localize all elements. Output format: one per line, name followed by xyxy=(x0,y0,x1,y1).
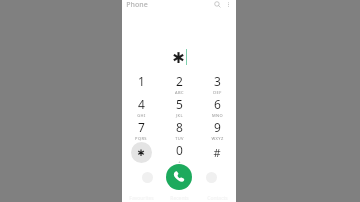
staticText: Contacts xyxy=(207,195,228,202)
button[interactable]: Favourites xyxy=(122,194,160,202)
staticText: 1 xyxy=(138,73,145,89)
button[interactable]: 2 xyxy=(160,72,198,95)
staticText: ABC xyxy=(175,90,184,95)
button[interactable]: 0 xyxy=(160,141,198,164)
staticText: # xyxy=(213,145,221,160)
button[interactable]: 4 xyxy=(122,95,160,118)
staticText: 3 xyxy=(214,73,221,89)
button[interactable]: Backspace xyxy=(192,164,230,190)
button[interactable]: 5 xyxy=(160,95,198,118)
staticText: + xyxy=(178,159,181,164)
staticText: 6 xyxy=(214,96,221,112)
button[interactable]: Video call xyxy=(128,164,166,190)
staticText: Recents xyxy=(170,195,189,202)
staticText: 7 xyxy=(138,119,145,135)
staticText: WXYZ xyxy=(211,136,224,141)
button[interactable]: # xyxy=(198,141,236,164)
staticText: 4 xyxy=(138,96,145,112)
staticText: TUV xyxy=(175,136,184,141)
staticText: 8 xyxy=(176,119,183,135)
staticText: 5 xyxy=(176,96,183,112)
button[interactable]: 1 xyxy=(122,72,160,95)
button[interactable]: 6 xyxy=(198,95,236,118)
button[interactable]: Search xyxy=(212,0,223,9)
staticText: ✱ xyxy=(137,148,145,158)
staticText: Favourites xyxy=(129,195,154,202)
button[interactable]: ✱ xyxy=(122,141,160,164)
staticText: 9 xyxy=(214,119,221,135)
staticText: DEF xyxy=(213,90,222,95)
button[interactable]: More options xyxy=(223,0,234,9)
staticText: 0 xyxy=(176,142,183,158)
staticText: ✱ xyxy=(172,49,185,66)
staticText: Phone xyxy=(126,0,148,9)
staticText: JKL xyxy=(176,113,183,118)
staticText: GHI xyxy=(137,113,146,118)
button[interactable]: 7 xyxy=(122,118,160,141)
staticText: MNO xyxy=(212,113,223,118)
button[interactable]: 3 xyxy=(198,72,236,95)
button[interactable]: 9 xyxy=(198,118,236,141)
staticText: PQRS xyxy=(135,136,147,141)
button[interactable]: 8 xyxy=(160,118,198,141)
button[interactable]: Call xyxy=(166,164,192,190)
staticText: 2 xyxy=(176,73,183,89)
